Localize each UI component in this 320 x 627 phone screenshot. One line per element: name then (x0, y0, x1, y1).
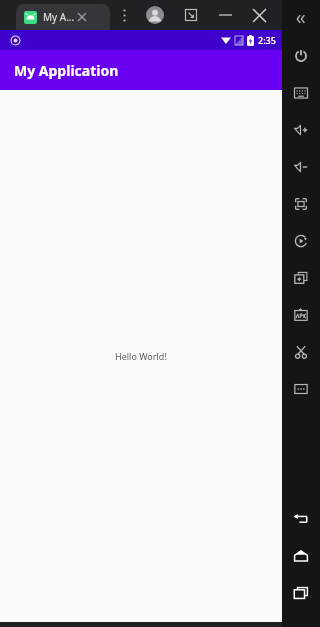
button[interactable]: Close window (248, 4, 270, 26)
button[interactable]: Restore (180, 4, 202, 26)
button[interactable]: Keyboard (282, 74, 320, 111)
button[interactable]: Minimize (214, 4, 236, 26)
button[interactable]: More options (114, 3, 134, 27)
button[interactable]: Power (282, 37, 320, 74)
button[interactable]: Install APK (282, 296, 320, 333)
button[interactable]: Account (144, 4, 166, 26)
button[interactable]: Screenshot (282, 259, 320, 296)
staticText: 2:35 (258, 34, 276, 46)
button[interactable]: My A... (16, 4, 110, 30)
button[interactable]: Snippet (282, 333, 320, 370)
button[interactable]: More (282, 370, 320, 407)
button[interactable]: Volume down (282, 148, 320, 185)
staticText: My Application (14, 61, 119, 80)
button[interactable]: My Application (0, 50, 282, 90)
button[interactable]: Volume up (282, 111, 320, 148)
button[interactable]: Rotate right (282, 222, 320, 259)
button[interactable]: Back (282, 500, 320, 537)
button[interactable]: Recents (282, 574, 320, 611)
button[interactable]: Close tab (75, 10, 89, 24)
staticText: Hello World! (115, 350, 167, 362)
staticText: My A... (43, 10, 75, 24)
button[interactable]: Rotate left (282, 185, 320, 222)
button[interactable]: Home (282, 537, 320, 574)
button[interactable]: Collapse (282, 0, 320, 37)
